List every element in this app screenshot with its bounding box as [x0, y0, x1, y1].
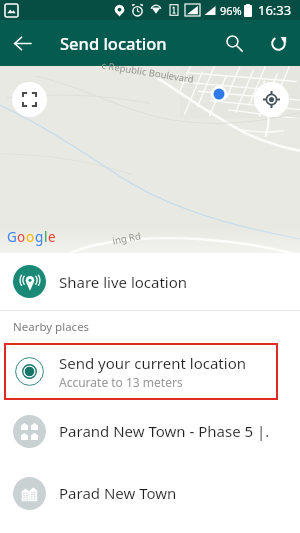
staticText: Parad New Town [59, 483, 177, 503]
staticText: G [7, 228, 17, 246]
button[interactable]: Refresh [256, 21, 300, 65]
staticText: o [26, 228, 35, 246]
staticText: e [48, 228, 56, 246]
button[interactable]: Search [212, 21, 256, 65]
staticText: Accurate to 13 meters [59, 374, 183, 390]
staticText: Share live location [59, 272, 188, 292]
staticText: l [44, 228, 48, 246]
staticText: g [35, 228, 44, 246]
staticText: Nearby places [13, 319, 90, 335]
button[interactable]: Back [0, 21, 44, 65]
staticText: 16:33 [258, 1, 292, 19]
button[interactable]: Send your current location [4, 343, 278, 400]
staticText: o [17, 228, 26, 246]
button[interactable]: Share live location [0, 253, 300, 310]
button[interactable]: Parad New Town [0, 462, 300, 524]
button[interactable]: Parand New Town - Phase 5 |. [0, 400, 300, 462]
staticText: Parand New Town - Phase 5 |. [59, 421, 270, 441]
button[interactable]: My location [254, 82, 289, 117]
staticText: Send your current location [59, 353, 246, 373]
button[interactable]: Fullscreen [12, 82, 47, 117]
staticText: 96% [220, 3, 242, 18]
staticText: Send location [60, 32, 167, 54]
